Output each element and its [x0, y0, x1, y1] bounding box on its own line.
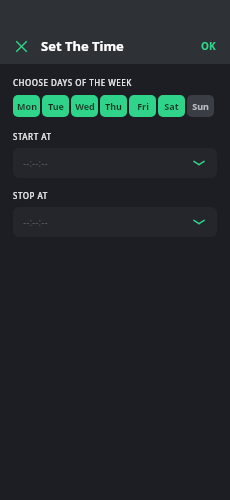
staticText: Fri: [137, 100, 149, 112]
staticText: Set The Time: [41, 37, 124, 55]
staticText: Sun: [192, 100, 209, 112]
staticText: STOP AT: [13, 190, 48, 201]
other: Expand time picker: [191, 157, 207, 169]
button[interactable]: Fri: [129, 95, 156, 117]
button[interactable]: Sun: [187, 95, 214, 117]
other: Expand time picker: [191, 216, 207, 228]
staticText: --:--:--: [23, 156, 48, 170]
staticText: Mon: [17, 100, 37, 112]
staticText: OK: [201, 39, 216, 53]
button[interactable]: OK: [197, 35, 220, 57]
button[interactable]: Wed: [71, 95, 98, 117]
staticText: Wed: [75, 100, 95, 112]
staticText: Thu: [105, 100, 122, 112]
staticText: CHOOSE DAYS OF THE WEEK: [13, 77, 132, 88]
button[interactable]: --:--:--: [13, 148, 217, 178]
staticText: Sat: [164, 100, 179, 112]
button[interactable]: Sat: [158, 95, 185, 117]
button[interactable]: Tue: [42, 95, 69, 117]
button[interactable]: --:--:--: [13, 207, 217, 237]
staticText: Tue: [48, 100, 64, 112]
staticText: START AT: [13, 131, 52, 142]
button[interactable]: Close: [9, 34, 33, 58]
button[interactable]: Mon: [13, 95, 40, 117]
staticText: --:--:--: [23, 215, 48, 229]
button[interactable]: Thu: [100, 95, 127, 117]
